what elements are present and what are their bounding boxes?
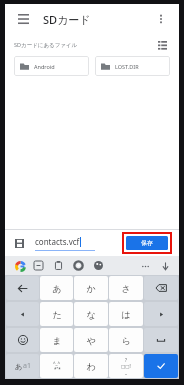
button[interactable]: わ	[74, 354, 108, 378]
button[interactable]: PUNCT	[109, 354, 143, 378]
staticText: わ	[86, 361, 96, 372]
button[interactable]: Hide keyboard	[157, 258, 173, 274]
staticText: ら	[121, 335, 131, 346]
button[interactable]: ENTER	[144, 354, 178, 378]
staticText: や	[86, 335, 96, 346]
button[interactable]: More	[137, 258, 153, 274]
staticText: _	[125, 369, 127, 375]
button[interactable]: た	[40, 302, 73, 326]
staticText: ま	[52, 335, 62, 346]
staticText: さ	[121, 283, 131, 294]
button[interactable]: あ	[40, 276, 73, 300]
button[interactable]: か	[74, 276, 108, 300]
button[interactable]: や	[74, 328, 108, 352]
staticText: あ	[52, 283, 62, 294]
button[interactable]: Clipboard	[48, 256, 68, 275]
button[interactable]: ま	[40, 328, 73, 352]
staticText: □□!	[121, 363, 131, 369]
staticText: 保存	[141, 239, 153, 247]
staticText: a1	[23, 361, 31, 371]
button[interactable]: さ	[109, 276, 143, 300]
staticText: *"*	[54, 366, 61, 372]
button[interactable]: EMOTICON	[40, 354, 73, 378]
staticText: な	[86, 309, 96, 320]
staticText: SDカードにあるファイル	[14, 41, 78, 49]
staticText: た	[52, 309, 62, 320]
staticText: は	[121, 309, 131, 320]
staticText: LOST.DIR	[115, 63, 139, 70]
staticText: ?	[125, 357, 127, 363]
button[interactable]: TRI_RIGHT	[144, 302, 178, 326]
button[interactable]: ら	[109, 328, 143, 352]
button[interactable]: SMILEY	[6, 328, 39, 352]
button[interactable]: More options	[151, 9, 171, 29]
button[interactable]: Google	[12, 258, 28, 274]
button[interactable]: 保存	[126, 236, 168, 250]
button[interactable]: SPACE	[144, 328, 178, 352]
button[interactable]: BACK_ARROW	[6, 276, 39, 300]
button[interactable]: Menu	[13, 9, 33, 29]
button[interactable]: な	[74, 302, 108, 326]
button[interactable]: Theme	[88, 256, 108, 275]
button[interactable]: Settings	[68, 256, 88, 275]
button[interactable]: MODE	[6, 354, 39, 378]
button[interactable]: は	[109, 302, 143, 326]
staticText: あ	[15, 362, 23, 371]
button[interactable]: LOST.DIR	[95, 56, 170, 76]
button[interactable]: View mode	[154, 37, 170, 53]
staticText: Android	[34, 63, 55, 70]
button[interactable]: Stickers	[28, 256, 48, 275]
staticText: contacts.vcf	[35, 236, 80, 247]
staticText: か	[86, 283, 96, 294]
button[interactable]: BACKSPACE	[144, 276, 178, 300]
button[interactable]: TRI_LEFT	[6, 302, 39, 326]
staticText: SDカード	[43, 12, 91, 27]
staticText: ^_^	[53, 360, 61, 366]
button[interactable]: Android	[14, 56, 89, 76]
button[interactable]: Storage	[12, 236, 26, 250]
